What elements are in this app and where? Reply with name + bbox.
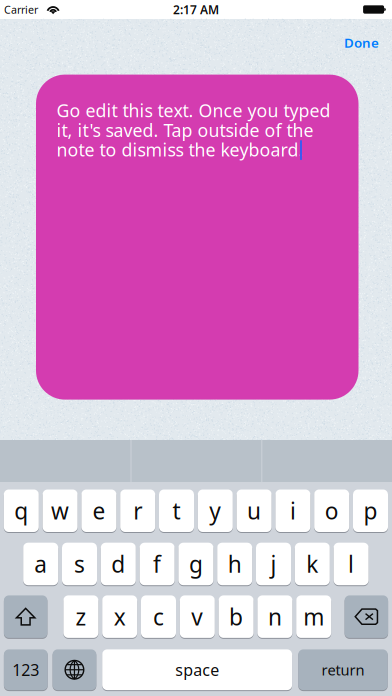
staticText: 123 <box>12 659 39 680</box>
staticText: Carrier <box>4 2 38 17</box>
staticText: z <box>75 602 86 632</box>
button[interactable]: k <box>0 440 392 696</box>
staticText: Done <box>344 34 379 51</box>
staticText: f <box>153 549 161 579</box>
button[interactable]: f <box>0 440 392 696</box>
staticText: j <box>270 549 276 579</box>
staticText: h <box>228 549 242 579</box>
staticText: l <box>348 549 354 579</box>
staticText: s <box>74 549 85 579</box>
staticText: it, it's saved. Tap outside of the <box>56 118 313 142</box>
button[interactable]: b <box>0 440 392 696</box>
button[interactable]: x <box>0 440 392 696</box>
button[interactable]: 123 <box>0 440 392 696</box>
staticText: t <box>172 496 180 526</box>
button[interactable]: v <box>0 440 392 696</box>
button[interactable]: space <box>0 440 392 696</box>
staticText: return <box>321 660 364 679</box>
button[interactable]: a <box>0 440 392 696</box>
staticText: m <box>303 602 324 632</box>
button[interactable]: w <box>0 440 392 696</box>
button[interactable]: h <box>0 440 392 696</box>
button[interactable]: r <box>0 440 392 696</box>
staticText: a <box>34 549 47 579</box>
button[interactable]: m <box>0 440 392 696</box>
staticText: w <box>51 496 69 526</box>
button[interactable]: d <box>0 440 392 696</box>
button[interactable]: u <box>0 440 392 696</box>
staticText: i <box>290 496 296 526</box>
staticText: space <box>175 659 219 680</box>
button[interactable]: q <box>0 440 392 696</box>
button[interactable]: s <box>0 440 392 696</box>
staticText: y <box>209 496 221 526</box>
button[interactable]: t <box>0 440 392 696</box>
staticText: Go edit this text. Once you typed <box>56 98 330 122</box>
button[interactable]: o <box>0 440 392 696</box>
button[interactable]: Shift <box>0 440 392 696</box>
staticText: v <box>191 602 203 632</box>
button[interactable]: l <box>0 440 392 696</box>
staticText: 2:17 AM <box>173 1 219 17</box>
staticText: p <box>363 496 377 526</box>
staticText: k <box>306 549 318 579</box>
staticText: g <box>189 549 203 579</box>
staticText: q <box>14 496 28 526</box>
button[interactable]: p <box>0 440 392 696</box>
button[interactable]: Delete <box>0 440 392 696</box>
button[interactable]: Next keyboard <box>0 440 392 696</box>
staticText: x <box>114 602 126 632</box>
button[interactable]: c <box>0 440 392 696</box>
staticText: u <box>247 496 261 526</box>
staticText: d <box>111 549 125 579</box>
button[interactable]: e <box>0 440 392 696</box>
staticText: r <box>133 496 142 526</box>
button[interactable]: y <box>0 440 392 696</box>
button[interactable]: Done <box>330 26 392 60</box>
button[interactable]: g <box>0 440 392 696</box>
button[interactable]: i <box>0 440 392 696</box>
button[interactable]: return <box>0 440 392 696</box>
staticText: note to dismiss the keyboard. <box>56 137 303 162</box>
button[interactable]: z <box>0 440 392 696</box>
staticText: o <box>325 496 339 526</box>
button[interactable]: j <box>0 440 392 696</box>
button[interactable]: n <box>0 440 392 696</box>
staticText: b <box>229 602 243 632</box>
staticText: c <box>153 602 164 632</box>
staticText: e <box>92 496 105 526</box>
staticText: n <box>268 602 282 632</box>
